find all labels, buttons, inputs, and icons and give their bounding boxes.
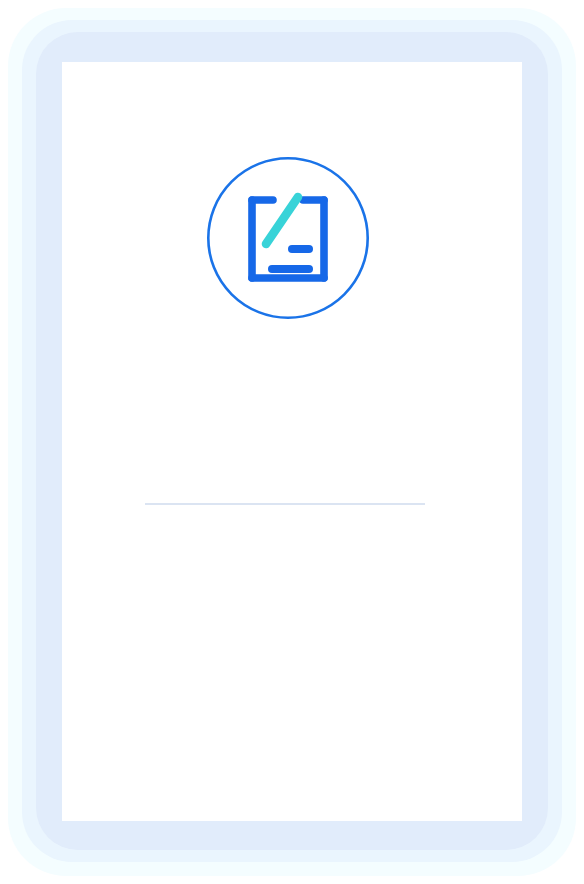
button[interactable]: Create note xyxy=(207,157,369,319)
